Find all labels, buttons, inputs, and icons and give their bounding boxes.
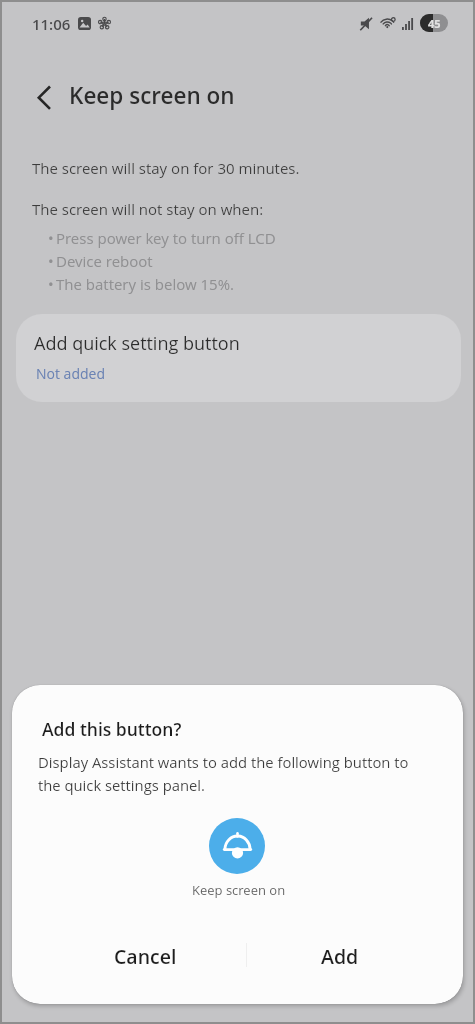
button[interactable]: Navigate up [28,82,60,114]
button[interactable]: Add quick setting button [16,314,461,402]
staticText: • [48,274,54,294]
button[interactable]: Cancel [44,925,246,987]
staticText: Cancel [114,943,177,970]
button[interactable]: Add [246,925,433,987]
staticText: Keep screen on [69,80,235,111]
staticText: 11:06 [32,14,71,34]
staticText: Keep screen on [192,881,286,899]
staticText: Not added [36,364,105,383]
staticText: Add [321,943,359,970]
staticText: Device reboot [56,251,153,271]
staticText: Press power key to turn off LCD [56,228,276,248]
staticText: Add quick setting button [34,331,240,356]
staticText: The battery is below 15%. [56,274,235,294]
staticText: The screen will not stay on when: [32,199,264,219]
staticText: The screen will stay on for 30 minutes. [32,158,300,178]
staticText: • [48,228,54,248]
staticText: Display Assistant wants to add the follo… [38,752,409,795]
staticText: Add this button? [42,717,182,741]
staticText: 45 [428,16,441,31]
staticText: • [48,251,54,271]
